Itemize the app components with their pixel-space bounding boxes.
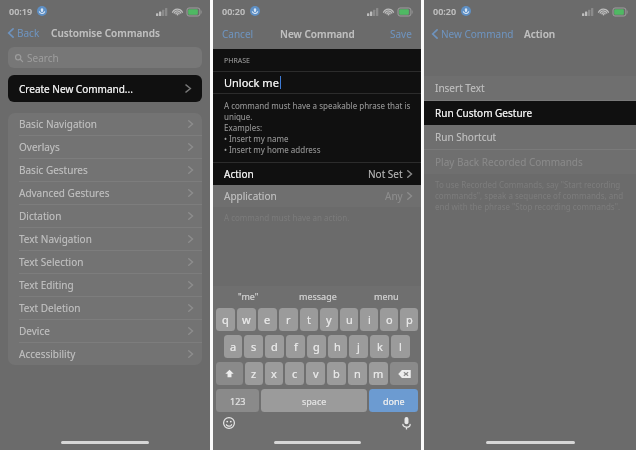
staticText: k — [377, 339, 383, 354]
button[interactable]: Accessibility — [8, 343, 202, 365]
staticText: Run Custom Gesture — [435, 106, 533, 120]
button[interactable]: y — [320, 308, 338, 331]
staticText: b — [333, 366, 340, 381]
button[interactable]: Text Selection — [8, 251, 202, 273]
staticText: A command must have an action. — [224, 212, 350, 223]
staticText: Play Back Recorded Commands — [435, 155, 583, 169]
button[interactable]: Play Back Recorded Commands — [424, 150, 636, 174]
staticText: message — [299, 290, 337, 302]
button[interactable]: v — [306, 362, 325, 385]
button[interactable]: t — [300, 308, 318, 331]
button[interactable]: Search — [8, 47, 202, 68]
button[interactable]: Emoji — [221, 415, 237, 431]
staticText: Text Selection — [19, 255, 188, 269]
button[interactable]: Run Custom Gesture — [424, 101, 636, 125]
staticText: To use Recorded Commands, say "Start rec… — [435, 179, 626, 212]
button[interactable]: g — [307, 335, 326, 358]
staticText: Accessibility — [19, 347, 188, 361]
button[interactable]: Insert Text — [424, 76, 636, 100]
button[interactable]: Back — [6, 23, 42, 43]
button[interactable]: f — [286, 335, 305, 358]
button[interactable]: Basic Gestures — [8, 159, 202, 181]
staticText: q — [222, 312, 229, 327]
button[interactable]: Shift — [216, 362, 243, 385]
staticText: r — [286, 312, 291, 327]
staticText: m — [373, 366, 384, 381]
button[interactable]: Application — [213, 185, 421, 207]
staticText: Create New Command... — [19, 82, 185, 96]
staticText: Customise Commands — [51, 26, 160, 40]
staticText: Basic Navigation — [19, 117, 188, 131]
button[interactable]: n — [348, 362, 367, 385]
button[interactable]: Overlays — [8, 136, 202, 158]
staticText: c — [292, 366, 298, 381]
button[interactable]: p — [400, 308, 418, 331]
button[interactable]: Cancel — [220, 25, 256, 43]
staticText: 00:19 — [9, 5, 33, 17]
staticText: Application — [224, 189, 385, 203]
button[interactable]: done — [369, 389, 418, 412]
button[interactable]: u — [340, 308, 358, 331]
button[interactable]: Save — [388, 25, 414, 43]
staticText: h — [334, 339, 341, 354]
staticText: 00:20 — [222, 5, 246, 17]
button[interactable]: j — [349, 335, 368, 358]
button[interactable]: menu — [352, 286, 421, 306]
staticText: Back — [17, 26, 40, 40]
button[interactable]: Unlock me — [213, 72, 421, 93]
button[interactable]: space — [261, 389, 367, 412]
button[interactable]: "me" — [213, 286, 283, 306]
staticText: Overlays — [19, 140, 188, 154]
button[interactable]: Basic Navigation — [8, 113, 202, 135]
button[interactable]: k — [370, 335, 389, 358]
staticText: Action — [524, 27, 556, 41]
staticText: Search — [27, 51, 59, 65]
staticText: done — [383, 395, 405, 407]
staticText: menu — [374, 290, 399, 302]
staticText: Text Navigation — [19, 232, 188, 246]
button[interactable]: d — [265, 335, 284, 358]
staticText: Device — [19, 324, 188, 338]
button[interactable]: b — [327, 362, 346, 385]
staticText: Any — [385, 189, 403, 203]
button[interactable]: New Command — [430, 24, 516, 44]
staticText: New Command — [441, 27, 514, 41]
button[interactable]: e — [258, 308, 277, 331]
staticText: d — [271, 339, 278, 354]
button[interactable]: Create New Command... — [8, 75, 202, 102]
button[interactable]: Backspace — [390, 362, 418, 385]
staticText: y — [326, 312, 332, 327]
button[interactable]: Run Shortcut — [424, 125, 636, 149]
staticText: e — [264, 312, 271, 327]
button[interactable]: Device — [8, 320, 202, 342]
staticText: space — [302, 395, 327, 407]
button[interactable]: Text Editing — [8, 274, 202, 296]
staticText: Cancel — [222, 27, 254, 41]
button[interactable]: message — [283, 286, 352, 306]
button[interactable]: Text Deletion — [8, 297, 202, 319]
staticText: • Insert my home address — [224, 144, 321, 155]
button[interactable]: c — [285, 362, 304, 385]
button[interactable]: a — [224, 335, 242, 358]
button[interactable]: Dictate — [400, 415, 413, 432]
button[interactable]: w — [237, 308, 256, 331]
button[interactable]: m — [369, 362, 388, 385]
button[interactable]: l — [391, 335, 410, 358]
staticText: l — [399, 339, 402, 354]
staticText: f — [294, 339, 298, 354]
button[interactable]: x — [265, 362, 283, 385]
button[interactable]: Text Navigation — [8, 228, 202, 250]
button[interactable]: r — [279, 308, 298, 331]
button[interactable]: z — [245, 362, 263, 385]
button[interactable]: q — [216, 308, 235, 331]
button[interactable]: s — [244, 335, 263, 358]
staticText: Advanced Gestures — [19, 186, 188, 200]
staticText: "me" — [238, 290, 259, 302]
button[interactable]: o — [380, 308, 398, 331]
button[interactable]: i — [360, 308, 378, 331]
button[interactable]: 123 — [216, 389, 259, 412]
button[interactable]: Advanced Gestures — [8, 182, 202, 204]
button[interactable]: Action — [213, 163, 421, 185]
button[interactable]: Dictation — [8, 205, 202, 227]
button[interactable]: h — [328, 335, 347, 358]
